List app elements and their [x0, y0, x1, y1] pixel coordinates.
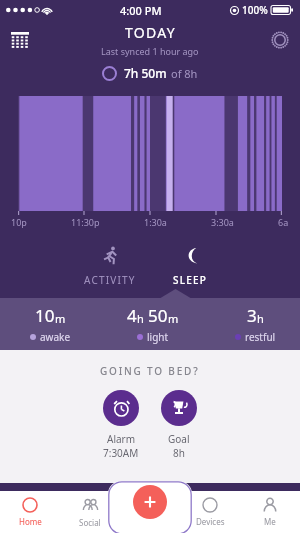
staticText: h — [137, 311, 144, 326]
button[interactable]: ACTIVITY — [70, 246, 150, 298]
staticText: GOING TO BED? — [100, 364, 200, 378]
staticText: restful — [245, 330, 276, 344]
staticText: SLEEP — [173, 273, 208, 287]
staticText: h — [257, 311, 264, 326]
staticText: light — [147, 330, 169, 344]
button[interactable]: Add — [133, 485, 167, 519]
staticText: Me — [264, 516, 276, 527]
staticText: 4:00 PM — [120, 3, 162, 18]
staticText: 7h 50m — [124, 65, 167, 81]
staticText: 7:30AM — [103, 446, 139, 460]
staticText: 100% — [242, 3, 268, 17]
staticText: m — [168, 311, 179, 326]
staticText: Devices — [196, 516, 225, 527]
button[interactable]: 7h 50m — [0, 60, 300, 86]
staticText: m — [55, 311, 66, 326]
button[interactable]: Me — [240, 491, 300, 533]
staticText: ACTIVITY — [84, 273, 136, 287]
button[interactable]: Devices — [180, 491, 240, 533]
staticText: awake — [40, 330, 71, 344]
staticText: 11:30p — [71, 216, 100, 228]
button[interactable]: 10 — [30, 304, 71, 344]
staticText: 6a — [278, 216, 289, 228]
button[interactable]: Sync — [266, 26, 294, 54]
staticText: Home — [19, 516, 42, 527]
staticText: 4 — [127, 304, 137, 327]
staticText: of 8h — [171, 66, 198, 81]
button[interactable]: Social — [60, 491, 120, 533]
staticText: 3 — [247, 304, 257, 327]
staticText: 3:30a — [211, 216, 234, 228]
staticText: TODAY — [125, 23, 176, 42]
staticText: Alarm — [107, 432, 136, 446]
staticText: 10p — [11, 216, 27, 228]
button[interactable]: 4 — [127, 304, 179, 344]
staticText: Social — [79, 517, 101, 528]
staticText: Goal — [168, 432, 190, 446]
staticText: Last synced 1 hour ago — [101, 45, 199, 57]
button[interactable]: Alarm — [103, 390, 139, 460]
staticText: 50 — [148, 304, 168, 327]
button[interactable]: Home — [0, 491, 60, 533]
button[interactable]: SLEEP — [150, 246, 230, 298]
staticText: 10 — [35, 304, 55, 327]
button[interactable]: Calendar — [6, 26, 34, 54]
staticText: 8h — [173, 446, 185, 460]
staticText: 1:30a — [144, 216, 167, 228]
button[interactable]: 3 — [235, 304, 276, 344]
button[interactable]: Goal — [161, 390, 197, 460]
